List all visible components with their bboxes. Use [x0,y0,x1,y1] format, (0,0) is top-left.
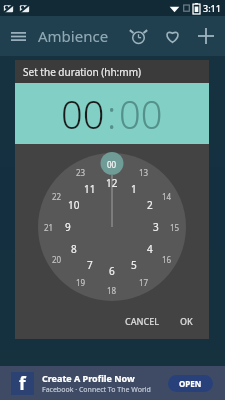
staticText: 00 [107,159,117,170]
button[interactable]: OK [174,311,199,331]
staticText: 1 [131,182,137,196]
staticText: 12 [106,176,118,190]
staticText: 20 [52,254,62,265]
button[interactable]: Timer [121,19,155,53]
button[interactable]: 00 [61,88,105,140]
staticText: 2 [147,198,153,212]
button[interactable]: f [0,366,225,400]
button[interactable]: OPEN [168,375,213,392]
button[interactable]: Menu [0,18,36,54]
staticText: 23 [76,167,86,178]
staticText: 13 [139,167,149,178]
button[interactable]: Add [189,19,223,53]
staticText: 16 [162,254,172,265]
staticText: 7 [87,258,93,272]
staticText: OK [180,315,193,327]
staticText: Set the duration (hh:mm) [23,65,141,79]
staticText: Ambience [38,26,109,46]
staticText: 11 [84,182,96,196]
staticText: 18 [107,285,117,296]
staticText: : [107,88,117,140]
staticText: 22 [52,191,62,202]
button[interactable]: CANCEL [119,311,166,331]
staticText: Create A Profile Now [42,372,135,384]
staticText: OPEN [179,378,202,389]
staticText: 14 [162,191,172,202]
staticText: 9 [65,220,71,234]
staticText: Facebook · Connect To The World [42,385,151,395]
staticText: 5 [131,258,137,272]
button[interactable]: 00 [119,88,163,140]
button[interactable]: Favorites [155,19,189,53]
staticText: 6 [109,264,115,278]
staticText: 3 [153,220,159,234]
staticText: 4 [147,242,153,256]
staticText: 00 [61,88,105,140]
staticText: 21 [44,222,54,233]
staticText: 19 [76,277,86,288]
staticText: 00 [119,88,163,140]
staticText: 15 [170,222,180,233]
staticText: 3:11 [203,2,221,14]
staticText: f [19,372,26,395]
staticText: 17 [139,277,149,288]
staticText: 10 [68,198,80,212]
staticText: CANCEL [125,315,160,327]
staticText: 8 [71,242,77,256]
